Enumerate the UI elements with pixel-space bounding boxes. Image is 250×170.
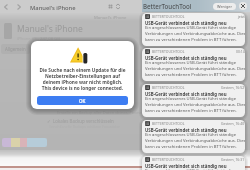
staticText: Allgemein [5, 46, 26, 52]
staticText: BETTERTOUCHTOOL [152, 121, 185, 126]
staticText: iPhone XS - 247,08 GB [17, 36, 61, 42]
staticText: Ein angeschlossenes USB-Gerät führt stän… [145, 25, 237, 31]
button[interactable]: BETTERTOUCHTOOL [142, 48, 245, 81]
staticText: Manuel's iPhone [17, 23, 83, 35]
staticText: Erstelle ein Backup aller Daten deines i… [57, 110, 142, 115]
staticText: BETTERTOUCHTOOL [152, 85, 185, 90]
staticText: BETTERTOUCHTOOL [152, 157, 185, 162]
button[interactable]: BETTERTOUCHTOOL [142, 156, 245, 170]
staticText: Verbindungen und Verbindungsabbrüche aus… [145, 66, 245, 72]
staticText: Ein angeschlossenes USB-Gerät führt stän… [145, 132, 237, 138]
staticText: USB-Gerät verbindet sich ständig neu [145, 20, 227, 26]
staticText: Ein angeschlossenes USB-Gerät führt stän… [145, 60, 237, 66]
staticText: BETTERTOUCHTOOL [152, 14, 185, 19]
staticText: ✓ Lokales Backup verschlüsseln [47, 118, 114, 124]
button[interactable]: Weniger [217, 4, 232, 9]
staticText: Manuel's iPhone [30, 4, 76, 12]
staticText: Die Suche nach einem Update für die Netz… [38, 67, 127, 91]
staticText: Verbindungen und Verbindungsabbrüche aus… [145, 102, 245, 108]
staticText: USB-Gerät verbindet sich ständig neu [145, 91, 227, 97]
staticText: kann zu verschiedenen Problem in BTT füh… [145, 144, 237, 150]
button[interactable]: OK [37, 96, 128, 105]
staticText: Gestern, 16:31 [221, 157, 245, 162]
button[interactable]: Allgemein [5, 46, 26, 52]
staticText: kann zu verschiedenen Problem in BTT füh… [145, 37, 237, 43]
staticText: Ein angeschlossenes USB-Gerät führt stän… [145, 96, 237, 102]
staticText: OK [79, 98, 86, 104]
staticText: kann zu verschiedenen Problem in BTT füh… [145, 72, 237, 78]
staticText: Manuel's iPhone [94, 15, 127, 21]
staticText: Ein angeschlossenes USB-Gerät führt stän… [145, 168, 237, 170]
staticText: Gestern, 16:40 [221, 121, 245, 126]
staticText: BETTERTOUCHTOOL [152, 49, 185, 54]
staticText: Verbindungen und Verbindungsabbrüche aus… [145, 31, 245, 37]
button[interactable]: BETTERTOUCHTOOL [142, 120, 245, 153]
staticText: Weniger [217, 4, 232, 9]
staticText: Verbindungen und Verbindungsabbrüche aus… [145, 138, 245, 144]
button[interactable]: BETTERTOUCHTOOL [142, 13, 245, 46]
staticText: USB-Gerät verbindet sich ständig neu [145, 55, 227, 61]
staticText: USB-Gerät verbindet sich ständig neu [145, 163, 227, 169]
staticText: jetzt [238, 14, 245, 19]
staticText: USB-Gerät verbindet sich ständig neu [145, 127, 227, 133]
button[interactable]: BETTERTOUCHTOOL [142, 84, 245, 117]
staticText: 00:14 [236, 49, 245, 54]
button[interactable]: Close notifications [239, 2, 247, 10]
staticText: kann zu verschiedenen Problem in BTT füh… [145, 108, 237, 114]
staticText: Gestern, 16:52 [221, 85, 245, 90]
staticText: BetterTouchTool [143, 2, 192, 10]
